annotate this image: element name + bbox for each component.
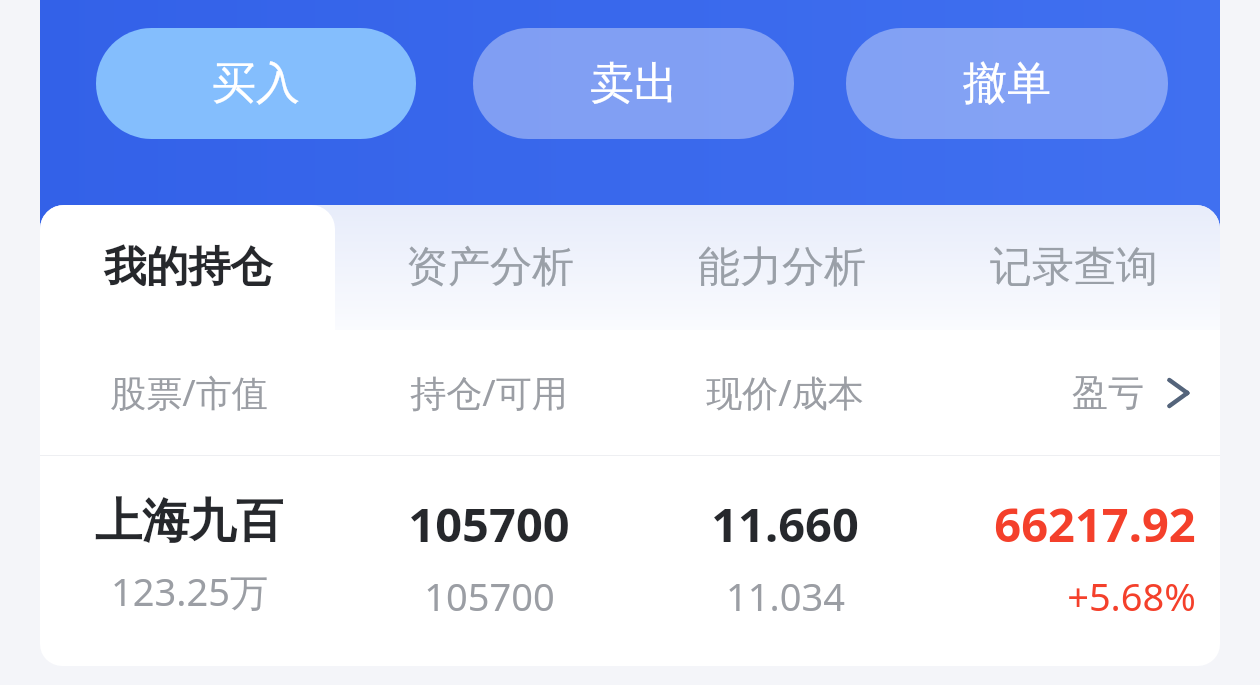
staticText: +5.68% [1067,570,1196,622]
button[interactable]: 我的持仓 [40,205,335,330]
other: More columns [1160,375,1196,411]
staticText: 我的持仓 [104,241,272,294]
staticText: 105700 [408,492,570,556]
staticText: 11.034 [726,570,845,622]
button[interactable]: 卖出 [473,28,794,139]
staticText: 撤单 [963,56,1051,111]
staticText: 现价/成本 [706,368,864,417]
staticText: 能力分析 [698,241,866,294]
button[interactable]: 股票/市值 [40,330,1220,455]
button[interactable]: 记录查询 [929,205,1219,330]
staticText: 11.660 [711,492,859,556]
staticText: 卖出 [590,56,678,111]
staticText: 记录查询 [990,241,1158,294]
button[interactable]: 买入 [96,28,416,139]
staticText: 105700 [424,570,555,622]
button[interactable]: 资产分析 [345,205,635,330]
staticText: 买入 [212,56,300,111]
staticText: 持仓/可用 [410,368,568,417]
staticText: 股票/市值 [110,368,268,417]
staticText: 盈亏 [1072,370,1144,415]
staticText: 资产分析 [406,241,574,294]
button[interactable]: 上海九百 [40,456,1220,666]
button[interactable]: 撤单 [846,28,1168,139]
staticText: 上海九百 [95,492,283,551]
button[interactable]: 能力分析 [637,205,927,330]
staticText: 66217.92 [994,492,1196,556]
staticText: 123.25万 [111,565,268,617]
